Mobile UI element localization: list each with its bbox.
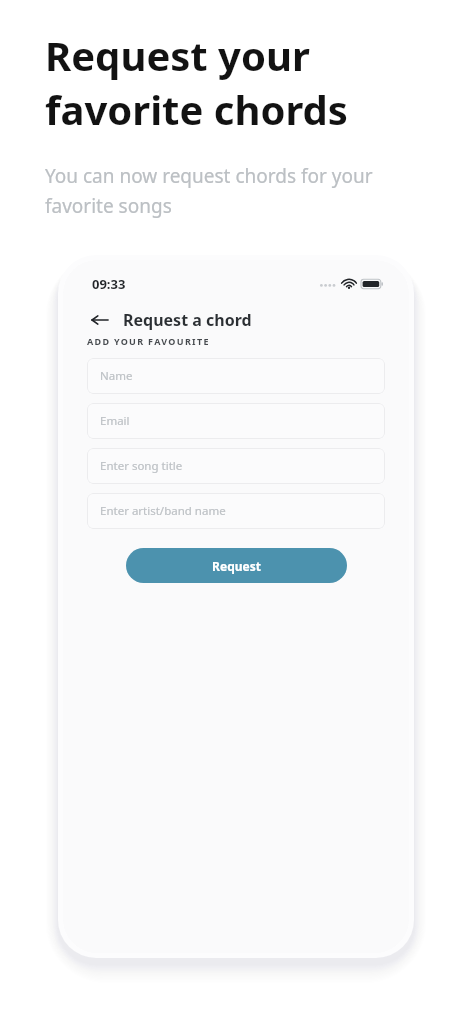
staticText: You can now request chords for your favo… <box>45 163 420 218</box>
button[interactable]: Enter song title <box>87 448 385 484</box>
button[interactable]: Request <box>126 548 347 583</box>
staticText: Request <box>212 558 261 574</box>
button[interactable]: Back <box>87 307 113 333</box>
staticText: 09:33 <box>92 275 126 293</box>
staticText: Request a chord <box>123 309 252 331</box>
staticText: Name <box>100 368 133 384</box>
button[interactable]: Name <box>87 358 385 394</box>
staticText: Email <box>100 413 130 429</box>
staticText: ADD YOUR FAVOURITE <box>87 335 210 347</box>
staticText: Request your <box>45 28 310 82</box>
button[interactable]: Enter artist/band name <box>87 493 385 529</box>
button[interactable]: Email <box>87 403 385 439</box>
staticText: Enter song title <box>100 458 183 474</box>
staticText: Enter artist/band name <box>100 503 226 519</box>
staticText: favorite chords <box>45 82 348 136</box>
